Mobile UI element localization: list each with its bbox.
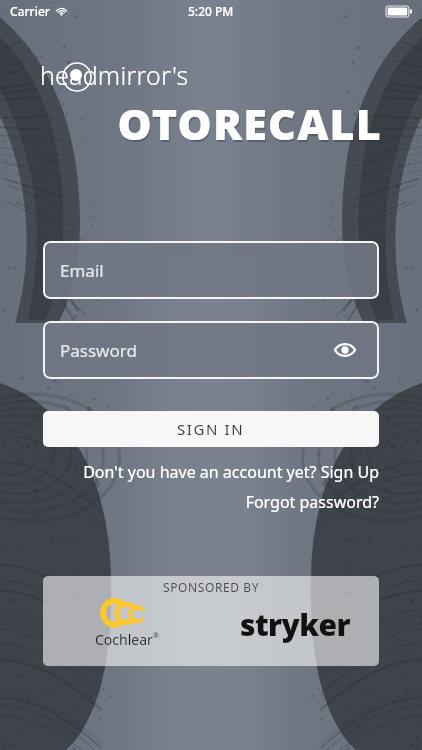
button[interactable]: Password bbox=[43, 321, 379, 379]
staticText: Email bbox=[60, 259, 104, 282]
staticText: Password bbox=[60, 339, 137, 362]
button[interactable]: Show password bbox=[328, 333, 362, 367]
staticText: Don't you have an account yet? Sign Up bbox=[43, 461, 379, 483]
staticText: OTORECALL bbox=[118, 96, 383, 148]
staticText: SPONSORED BY bbox=[163, 579, 260, 595]
button[interactable]: Don't you have an account yet? Sign Up bbox=[43, 461, 379, 483]
staticText: SIGN IN bbox=[177, 419, 245, 439]
staticText: 5:20 PM bbox=[188, 3, 234, 19]
button[interactable]: SIGN IN bbox=[43, 411, 379, 447]
staticText: ® bbox=[153, 631, 159, 641]
staticText: headmirror's bbox=[40, 58, 189, 92]
button[interactable]: Email bbox=[43, 241, 379, 299]
staticText: OTORECALL bbox=[117, 94, 382, 146]
staticText: Carrier bbox=[10, 3, 50, 19]
staticText: Cochlear bbox=[95, 630, 153, 649]
staticText: stryker bbox=[240, 604, 350, 645]
button[interactable]: Forgot password? bbox=[43, 491, 379, 513]
staticText: Forgot password? bbox=[43, 491, 379, 513]
